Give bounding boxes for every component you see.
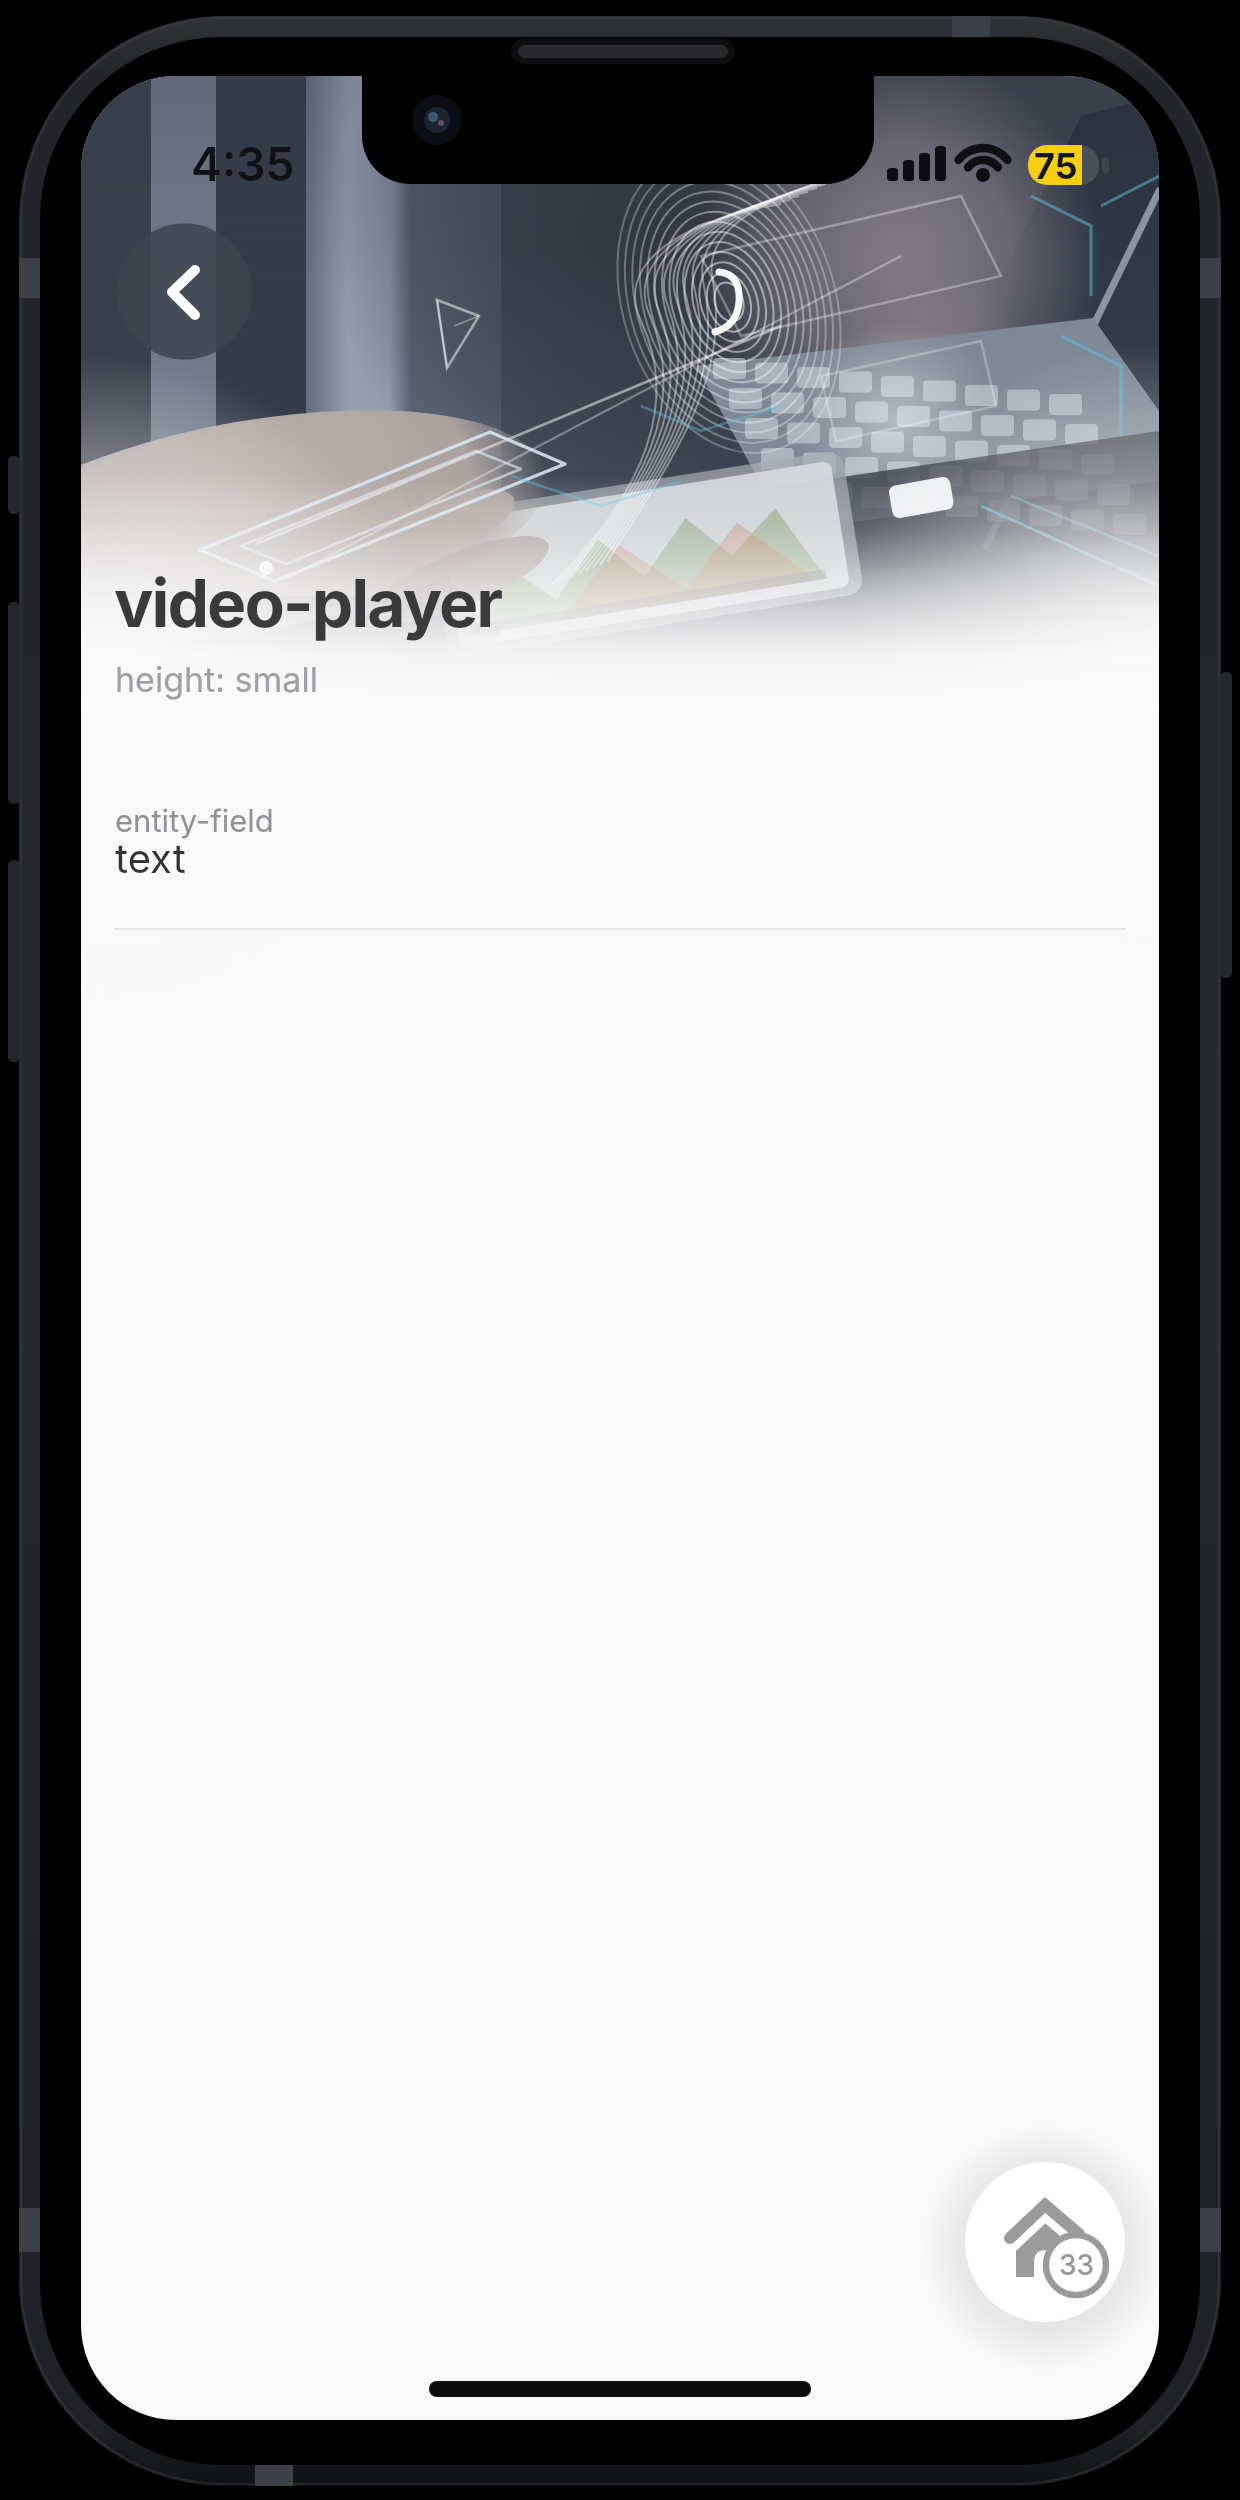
staticText: 75 [1034, 144, 1078, 188]
staticText: entity-field [115, 802, 274, 840]
staticText: text [115, 834, 186, 882]
staticText: height: small [115, 659, 318, 700]
button[interactable] [965, 2162, 1125, 2322]
button[interactable] [117, 224, 251, 358]
staticText: video-player [114, 563, 502, 643]
staticText: 33 [1059, 2248, 1095, 2282]
staticText: 4:35 [191, 136, 295, 192]
